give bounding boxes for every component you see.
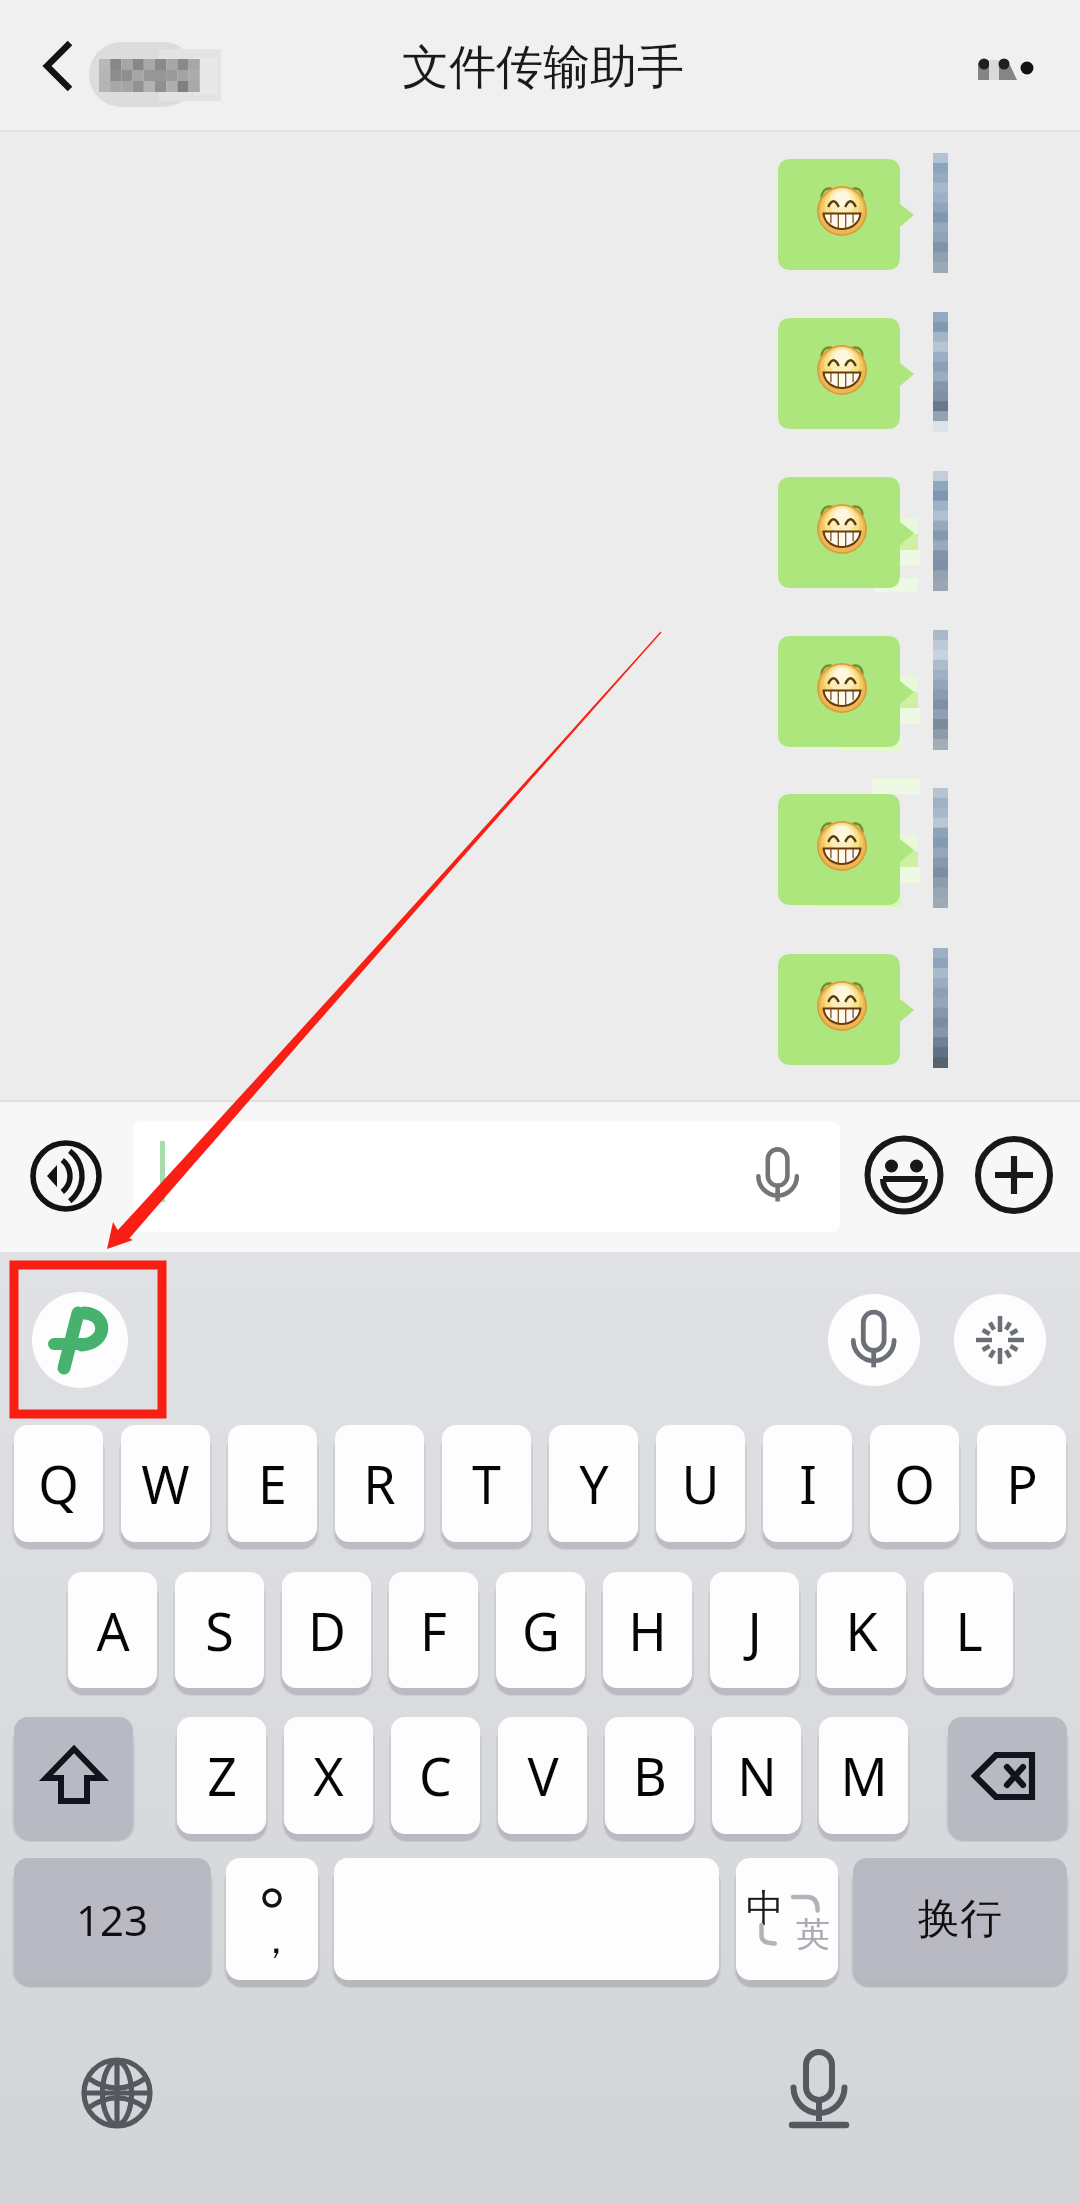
staticText: E xyxy=(258,1448,287,1519)
staticText: 文件传输助手 xyxy=(402,38,684,97)
button[interactable]: F xyxy=(389,1572,478,1688)
button[interactable]: More options xyxy=(960,38,1040,118)
staticText: D xyxy=(308,1595,346,1666)
staticText: R xyxy=(363,1448,396,1519)
button[interactable]: U xyxy=(656,1425,745,1542)
staticText: W xyxy=(141,1448,190,1519)
staticText: F xyxy=(420,1595,447,1666)
button[interactable]: E xyxy=(228,1425,317,1542)
button[interactable]: Shift xyxy=(14,1717,133,1834)
staticText: C xyxy=(419,1740,452,1811)
staticText: P xyxy=(1006,1448,1038,1519)
button[interactable]: More functions xyxy=(974,1135,1054,1215)
button[interactable]: I xyxy=(763,1425,852,1542)
button[interactable]: N xyxy=(712,1717,801,1834)
button[interactable]: O xyxy=(870,1425,959,1542)
staticText: I xyxy=(799,1448,817,1519)
staticText: Q xyxy=(38,1448,79,1519)
button[interactable]: M xyxy=(819,1717,908,1834)
button[interactable]: Z xyxy=(177,1717,266,1834)
button[interactable]: W xyxy=(121,1425,210,1542)
button[interactable]: Input method logo xyxy=(32,1292,128,1388)
button[interactable]: X xyxy=(284,1717,373,1834)
staticText: J xyxy=(747,1595,762,1666)
button[interactable]: Space xyxy=(334,1858,719,1980)
staticText: O xyxy=(894,1448,935,1519)
button[interactable]: V xyxy=(498,1717,587,1834)
staticText: 中 xyxy=(746,1884,784,1932)
button[interactable]: Backspace xyxy=(948,1717,1067,1834)
button[interactable]: S xyxy=(175,1572,264,1688)
staticText: K xyxy=(845,1595,878,1666)
staticText: L xyxy=(955,1595,983,1666)
staticText: U xyxy=(681,1448,720,1519)
staticText: Z xyxy=(207,1740,237,1811)
button[interactable]: Y xyxy=(549,1425,638,1542)
staticText: Y xyxy=(579,1448,609,1519)
button[interactable]: C xyxy=(391,1717,480,1834)
button[interactable]: L xyxy=(924,1572,1013,1688)
button[interactable]: 换行 xyxy=(853,1858,1067,1980)
button[interactable]: Keyboard settings xyxy=(954,1294,1046,1386)
button[interactable]: Comma xyxy=(226,1858,318,1980)
staticText: G xyxy=(522,1595,560,1666)
staticText: 英 xyxy=(796,1913,830,1956)
button[interactable]: H xyxy=(603,1572,692,1688)
button[interactable]: R xyxy=(335,1425,424,1542)
staticText: 换行 xyxy=(918,1893,1002,1946)
staticText: B xyxy=(633,1740,667,1811)
staticText: X xyxy=(313,1740,344,1811)
button[interactable]: K xyxy=(817,1572,906,1688)
staticText: A xyxy=(96,1595,130,1666)
staticText: V xyxy=(527,1740,559,1811)
button[interactable]: Voice input xyxy=(29,1139,103,1213)
staticText: T xyxy=(472,1448,501,1519)
staticText: H xyxy=(628,1595,667,1666)
staticText: ， xyxy=(256,1914,296,1964)
button[interactable]: T xyxy=(442,1425,531,1542)
staticText: S xyxy=(205,1595,234,1666)
button[interactable]: Q xyxy=(14,1425,103,1542)
button[interactable]: J xyxy=(710,1572,799,1688)
button[interactable]: Emoji xyxy=(864,1135,944,1215)
button[interactable]: Chinese English toggle xyxy=(736,1858,838,1980)
staticText: 123 xyxy=(76,1891,149,1948)
button[interactable]: Voice typing xyxy=(779,2036,859,2116)
staticText: M xyxy=(840,1740,888,1811)
button[interactable]: P xyxy=(977,1425,1066,1542)
button[interactable]: Back xyxy=(18,25,100,107)
staticText: N xyxy=(737,1740,777,1811)
button[interactable]: Voice input xyxy=(828,1294,920,1386)
button[interactable]: G xyxy=(496,1572,585,1688)
button[interactable]: 123 xyxy=(14,1858,211,1980)
button[interactable] xyxy=(133,1121,840,1232)
button[interactable]: Switch language xyxy=(82,2058,152,2128)
button[interactable]: A xyxy=(68,1572,157,1688)
button[interactable]: B xyxy=(605,1717,694,1834)
button[interactable]: D xyxy=(282,1572,371,1688)
